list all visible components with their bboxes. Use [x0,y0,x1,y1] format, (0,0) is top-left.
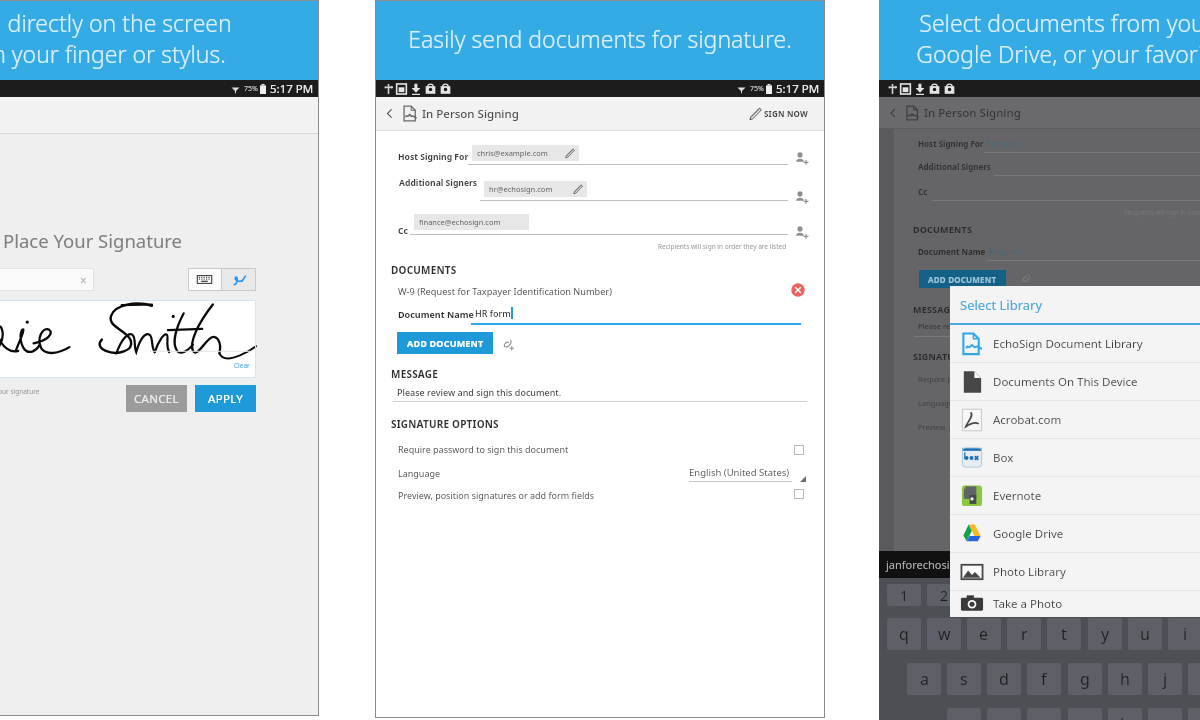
staticText: d [999,668,1009,690]
staticText: Preview, position signatures or add form… [398,489,595,501]
staticText: 6 [1101,586,1110,605]
button[interactable]: 1 [887,584,921,606]
button[interactable]: Documents On This Device [950,363,1200,400]
button[interactable]: u [1128,618,1162,650]
staticText: Acrobat.com [993,412,1062,428]
staticText: 3 [980,586,989,605]
button[interactable]: t [1047,618,1081,650]
staticText: Box [993,450,1014,466]
staticText: y [1101,623,1110,645]
button[interactable]: d [987,663,1021,695]
button[interactable]: Add signer [792,188,810,206]
button[interactable]: 3 [967,584,1001,606]
button[interactable]: Require password checkbox [794,445,804,455]
button[interactable]: 5 [1047,584,1081,606]
button[interactable]: SIGN NOW [749,107,808,120]
staticText: w [938,623,951,645]
button[interactable]: Take a Photo [950,591,1200,617]
button[interactable]: Attach file [500,337,514,351]
button[interactable]: Add host [792,149,810,167]
button[interactable]: Box [950,439,1200,476]
button[interactable]: 4 [1007,584,1041,606]
button[interactable]: APPLY [195,385,256,412]
staticText: MESSAGE [913,303,956,315]
staticText: Draw your signature [0,387,40,396]
staticText: Documents On This Device [993,374,1138,390]
staticText: e [979,623,989,645]
button[interactable]: y [1088,618,1122,650]
button[interactable]: 8 [1168,584,1200,606]
button[interactable]: e [967,618,1001,650]
staticText: 75% [244,84,258,94]
staticText: h [1120,668,1130,690]
button[interactable]: Draw signature [222,268,256,291]
button[interactable]: b [1108,708,1142,720]
button[interactable]: s [947,663,981,695]
staticText: u [1140,623,1150,645]
staticText: DOCUMENTS [391,263,457,277]
staticText: Required [989,246,1023,257]
button[interactable]: Google Drive [950,515,1200,552]
staticText: 4 [1020,586,1029,605]
staticText: Select Library [960,296,1043,314]
staticText: Language [398,467,441,479]
button[interactable]: Type signature [188,268,221,291]
button[interactable]: 7 [1128,584,1162,606]
staticText: SIGNATURE OPTIONS [391,417,499,431]
staticText: Please review and sign this document. [918,321,1055,331]
staticText: janforechosign@gmail.com [886,557,1028,572]
button[interactable]: Photo Library [950,553,1200,590]
button[interactable]: ADD DOCUMENT [397,332,493,354]
button[interactable]: a [907,663,941,695]
button[interactable]: h [1108,663,1142,695]
staticText: ADD DOCUMENT [407,337,484,349]
staticText: W-9 (Request for Taxpayer Identification… [398,285,612,298]
staticText: 1 [900,586,909,605]
button[interactable]: i [1168,618,1200,650]
button[interactable]: Preview signatures checkbox [794,489,804,499]
button[interactable]: Remove document [791,283,805,297]
button[interactable]: g [1068,663,1102,695]
button[interactable]: Add cc [792,223,810,241]
staticText: Place Your Signature [3,228,183,253]
staticText: Additional Signers [918,161,991,172]
staticText: Evernote [993,488,1042,504]
button[interactable]: q [887,618,921,650]
button[interactable]: r [1007,618,1041,650]
staticText: Require password to sign this document [918,374,1060,384]
staticText: In Person Signing [924,105,1021,121]
staticText: × [80,272,87,288]
button[interactable]: Acrobat.com [950,401,1200,438]
button[interactable]: j [1148,663,1182,695]
staticText: b [1120,713,1130,720]
button[interactable]: EchoSign Document Library [950,325,1200,362]
button[interactable]: w [927,618,961,650]
staticText: j [1163,668,1168,690]
staticText: DOCUMENTS [913,223,973,235]
button[interactable]: Back [383,105,519,122]
button[interactable]: Evernote [950,477,1200,514]
staticText: a [920,668,929,690]
staticText: Host Signing For [918,138,984,149]
staticText: Please review and sign this document. [397,386,562,398]
button[interactable]: 6 [1088,584,1122,606]
staticText: Google Drive, or your favorite cloud. [916,38,1200,69]
staticText: Select documents from your device, [919,7,1200,38]
staticText: Cc [918,186,928,197]
button[interactable]: 2 [927,584,961,606]
staticText: Photo Library [993,564,1066,580]
staticText: 8 [1181,586,1190,605]
staticText: r [1021,623,1028,645]
button[interactable]: CANCEL [126,385,187,412]
staticText: chris@example.com [477,148,548,158]
button[interactable]: f [1027,663,1061,695]
